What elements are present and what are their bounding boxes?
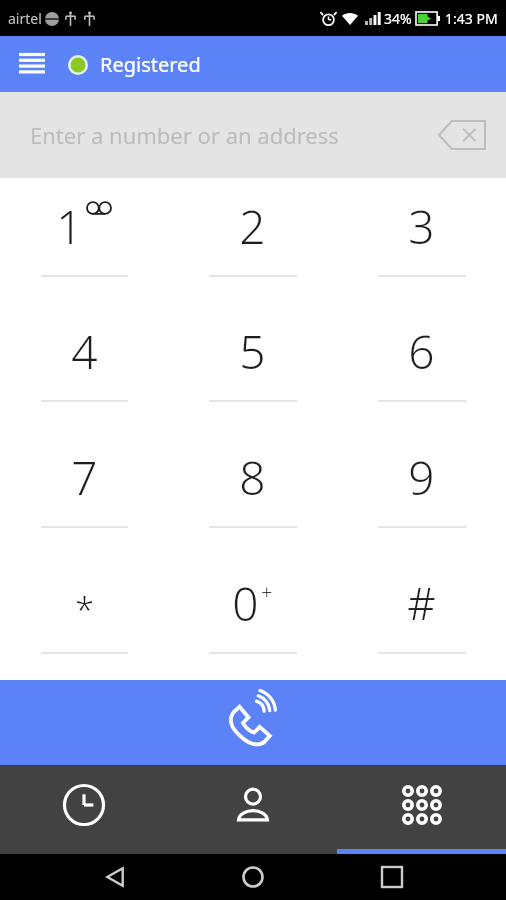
staticText: +: [261, 578, 273, 605]
staticText: Enter a number or an address: [30, 120, 339, 150]
staticText: 7: [71, 446, 98, 509]
staticText: 0: [232, 572, 259, 635]
staticText: 34%: [384, 9, 412, 28]
button[interactable]: Contacts: [168, 765, 337, 854]
button[interactable]: Back: [91, 854, 139, 900]
button[interactable]: 6: [337, 303, 506, 428]
button[interactable]: 1: [0, 178, 168, 303]
button[interactable]: 2: [168, 178, 337, 303]
button[interactable]: Call history: [0, 765, 168, 854]
staticText: *: [75, 587, 94, 633]
button[interactable]: Dialpad: [337, 765, 506, 854]
staticText: #: [407, 573, 436, 633]
staticText: 1:43 PM: [445, 9, 498, 28]
staticText: 4: [71, 320, 98, 383]
button[interactable]: 3: [337, 178, 506, 303]
button[interactable]: Recent apps: [368, 854, 416, 900]
staticText: 3: [408, 195, 435, 258]
button[interactable]: Call: [0, 680, 506, 765]
staticText: 1: [56, 195, 83, 258]
staticText: 6: [408, 320, 435, 383]
staticText: Registered: [100, 51, 201, 78]
button[interactable]: 4: [0, 303, 168, 428]
button[interactable]: Enter a number or an address: [0, 92, 506, 178]
button[interactable]: Backspace: [436, 109, 488, 161]
button[interactable]: 8: [168, 428, 337, 554]
button[interactable]: #: [337, 554, 506, 680]
button[interactable]: 7: [0, 428, 168, 554]
staticText: airtel: [8, 9, 42, 28]
staticText: 9: [408, 446, 435, 509]
button[interactable]: 0: [168, 554, 337, 680]
button[interactable]: 5: [168, 303, 337, 428]
staticText: 8: [239, 446, 266, 509]
button[interactable]: Open navigation menu: [8, 40, 56, 88]
staticText: 5: [239, 320, 266, 383]
button[interactable]: *: [0, 554, 168, 680]
staticText: 2: [239, 195, 266, 258]
button[interactable]: Home: [229, 854, 277, 900]
button[interactable]: 9: [337, 428, 506, 554]
